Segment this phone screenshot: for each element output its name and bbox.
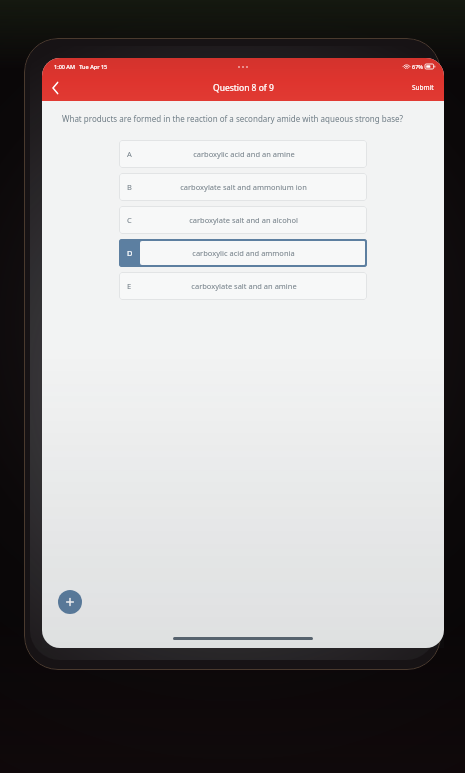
staticText: carboxylate salt and an amine: [191, 281, 297, 291]
staticText: carboxylate salt and ammonium ion: [180, 182, 307, 192]
button[interactable]: E: [119, 272, 367, 300]
staticText: C: [127, 215, 132, 225]
staticText: carboxylic acid and an amine: [193, 149, 295, 159]
staticText: Submit: [412, 83, 434, 92]
staticText: carboxylic acid and ammonia: [192, 248, 295, 258]
staticText: Question 8 of 9: [213, 82, 274, 94]
button[interactable]: Back: [42, 75, 68, 101]
staticText: B: [127, 182, 132, 192]
button[interactable]: B: [119, 173, 367, 201]
staticText: 67%: [412, 63, 423, 70]
staticText: 1:00 AM Tue Apr 15: [54, 63, 108, 70]
button[interactable]: Submit: [402, 78, 444, 97]
staticText: What products are formed in the reaction…: [62, 113, 422, 124]
staticText: carboxylate salt and an alcohol: [189, 215, 298, 225]
staticText: A: [127, 149, 132, 159]
button[interactable]: C: [119, 206, 367, 234]
button[interactable]: D: [119, 239, 367, 267]
button[interactable]: A: [119, 140, 367, 168]
staticText: E: [127, 281, 132, 291]
button[interactable]: Add: [58, 590, 82, 614]
staticText: D: [127, 248, 133, 258]
